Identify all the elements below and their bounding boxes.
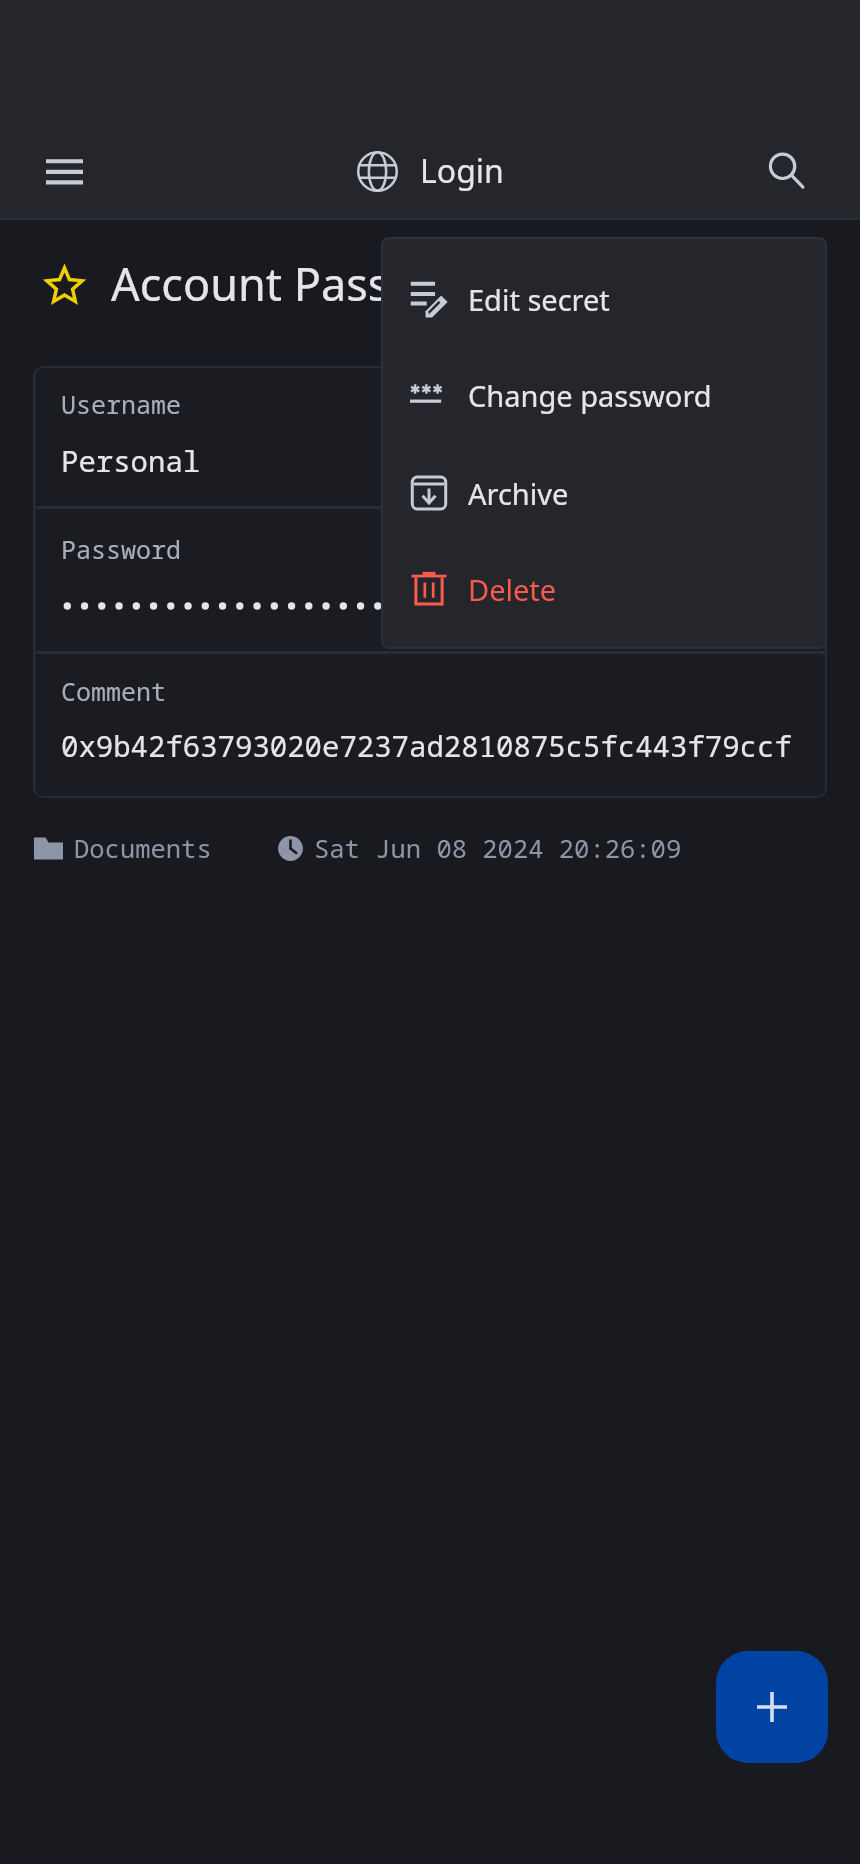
staticText: Login [420, 149, 504, 193]
button[interactable]: Favorite [44, 266, 85, 307]
staticText: Account Password [111, 253, 498, 314]
staticText: Comment [61, 674, 167, 708]
button[interactable]: Menu [34, 145, 94, 205]
button[interactable]: Change password [381, 347, 827, 443]
staticText: Sat Jun 08 2024 20:26:09 [314, 831, 682, 866]
staticText: Edit secret [468, 280, 610, 319]
button[interactable]: Search [757, 142, 817, 202]
button[interactable]: Edit secret [381, 251, 827, 347]
button[interactable]: Comment [33, 654, 827, 798]
staticText: Archive [468, 474, 569, 513]
staticText: Personal [61, 441, 201, 480]
staticText: Documents [74, 831, 212, 866]
staticText: Delete [468, 570, 557, 609]
staticText: 0x9b42f63793020e7237ad2810875c5fc443f79c… [61, 726, 792, 765]
button[interactable]: Password [33, 509, 827, 651]
button[interactable]: Username [33, 366, 827, 506]
staticText: Change password [468, 376, 712, 415]
button[interactable]: Account Password [111, 253, 498, 314]
button[interactable]: Add [716, 1651, 828, 1763]
staticText: Password [61, 532, 182, 566]
button[interactable]: Archive [381, 443, 827, 539]
button[interactable]: Delete [381, 539, 827, 635]
staticText: Username [61, 387, 182, 421]
